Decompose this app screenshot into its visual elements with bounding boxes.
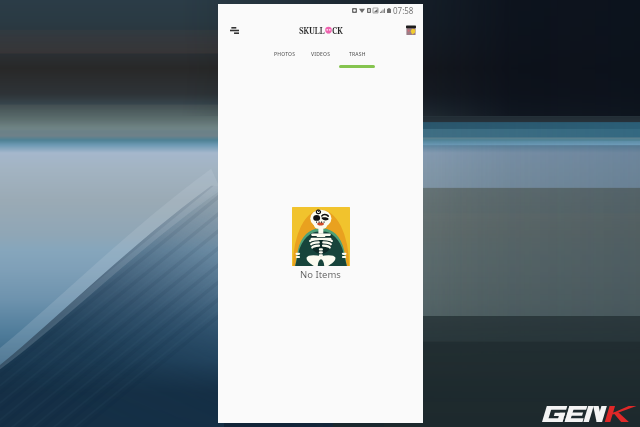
button[interactable]: PHOTOS <box>267 46 303 65</box>
staticText: PHOTOS <box>274 51 296 58</box>
staticText: TRASH <box>349 51 366 58</box>
staticText: CK <box>332 25 343 36</box>
staticText: VIDEOS <box>311 51 331 58</box>
staticText: No Items <box>300 268 341 281</box>
staticText: SKULL <box>299 25 325 36</box>
button[interactable]: TRASH <box>339 46 375 68</box>
staticText: 07:58 <box>393 5 414 16</box>
button[interactable]: VIDEOS <box>303 46 339 65</box>
button[interactable]: Vault <box>402 21 420 39</box>
button[interactable]: Menu <box>224 20 244 40</box>
